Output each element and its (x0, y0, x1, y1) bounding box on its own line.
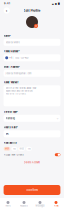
staticText: Confirm (26, 188, 37, 192)
staticText: Availability (4, 141, 17, 144)
button[interactable]: Confirm (4, 185, 60, 195)
staticText: 9:41 (4, 2, 10, 5)
staticText: Hourly Rate* (4, 126, 18, 129)
button[interactable]: Messages (32, 198, 48, 210)
staticText: +1 (9, 56, 12, 59)
button[interactable]: Wed (18, 147, 25, 151)
staticText: Tue (13, 148, 16, 150)
staticText: Requests (20, 205, 28, 207)
staticText: Messages (35, 205, 44, 207)
button[interactable]: Home (0, 198, 16, 210)
staticText: Edit Profile (23, 9, 40, 12)
staticText: jessica.moore@mail.com (6, 72, 32, 75)
staticText: Thu (27, 148, 30, 150)
staticText: Home (5, 205, 10, 207)
staticText: $45 (6, 132, 9, 135)
staticText: Mon (5, 148, 9, 150)
staticText: Accept new clients (4, 153, 24, 156)
staticText: Email Address* (4, 65, 20, 68)
button[interactable]: Tue (11, 147, 17, 151)
staticText: Service Type* (4, 110, 18, 113)
button[interactable]: Requests (16, 198, 32, 210)
button[interactable]: Change photo (34, 24, 38, 28)
button[interactable]: Thu (26, 147, 32, 151)
staticText: About Yourself (4, 81, 19, 84)
button[interactable]: Back (4, 7, 10, 14)
button[interactable]: Profile (48, 198, 64, 210)
staticText: Profile (53, 205, 58, 207)
staticText: Phone Number* (4, 50, 20, 53)
button[interactable]: Delete Account (4, 160, 60, 164)
staticText: Plumbing (6, 117, 15, 120)
staticText: Jessica Moore (6, 41, 20, 44)
staticText: Name* (4, 34, 11, 37)
staticText: (555) 123-4567 (15, 56, 29, 59)
button[interactable]: Accept new clients (55, 153, 60, 156)
staticText: Wed (20, 148, 24, 150)
staticText: ▃ ▅ ▇ (52, 2, 60, 5)
staticText: ‹ (6, 8, 8, 13)
button[interactable]: Mon (4, 147, 10, 151)
staticText: ⌄ (56, 117, 58, 120)
staticText: Delete Account (24, 161, 40, 164)
staticText: Write a few words about your experience … (6, 87, 37, 95)
